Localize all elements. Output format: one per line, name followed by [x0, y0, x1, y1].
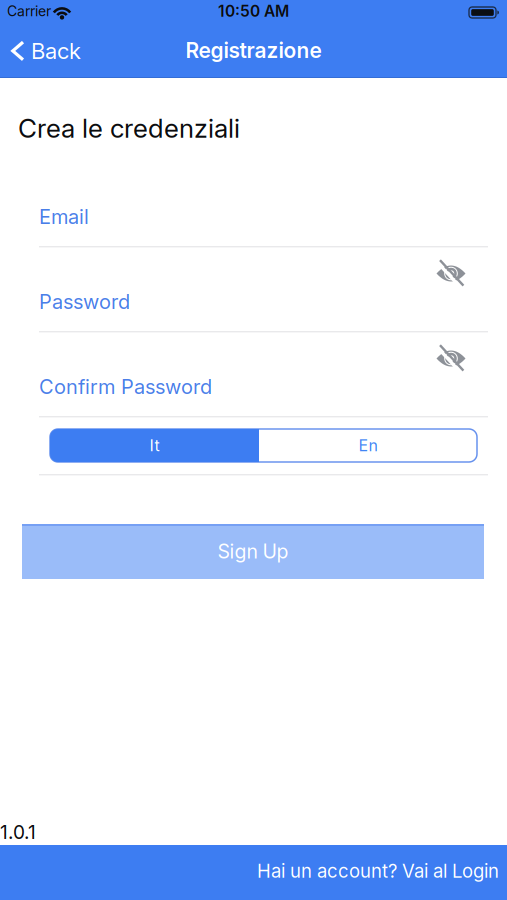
staticText: Confirm Password	[39, 375, 212, 398]
staticText: Carrier	[7, 3, 51, 19]
staticText: Registrazione	[185, 38, 321, 63]
staticText: Crea le credenziali	[18, 113, 240, 143]
button[interactable]: Back	[11, 38, 81, 64]
button[interactable]: It	[50, 429, 259, 462]
button[interactable]: En	[259, 429, 477, 462]
button[interactable]: Show confirm password	[436, 344, 466, 373]
button[interactable]: Sign Up	[22, 524, 484, 579]
staticText: 1.0.1	[0, 821, 36, 843]
staticText: Sign Up	[217, 540, 288, 563]
staticText: 10:50 AM	[218, 2, 289, 20]
staticText: Back	[31, 38, 81, 64]
staticText: It	[149, 436, 159, 455]
staticText: Email	[39, 205, 89, 228]
button[interactable]: Show password	[436, 259, 466, 288]
staticText: Password	[39, 290, 130, 313]
staticText: En	[358, 436, 377, 455]
staticText: Hai un account? Vai al Login	[257, 860, 499, 882]
button[interactable]: Hai un account? Vai al Login	[0, 845, 507, 900]
